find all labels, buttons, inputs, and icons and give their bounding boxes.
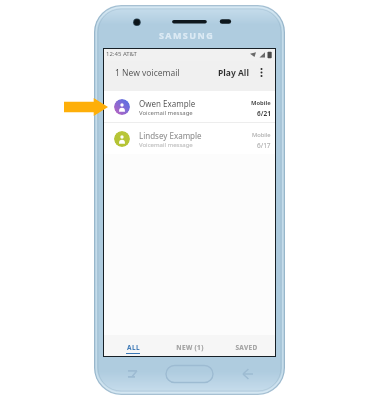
other: Pointer arrow	[64, 98, 108, 116]
button[interactable]: Play All	[215, 62, 252, 82]
staticText: 1 New voicemail	[115, 67, 180, 79]
button[interactable]: More options	[256, 61, 267, 82]
staticText: Mobile	[252, 131, 271, 139]
button[interactable]: ALL	[104, 335, 161, 356]
staticText: Voicemail message	[139, 109, 193, 117]
staticText: Lindsey Example	[139, 130, 202, 141]
button[interactable]: Lindsey Example	[104, 123, 275, 154]
staticText: 12:45 AT&T	[106, 50, 137, 58]
staticText: 6/17	[257, 141, 271, 150]
button[interactable]: Owen Example	[104, 91, 275, 122]
button[interactable]: NEW (1)	[161, 335, 218, 356]
staticText: Owen Example	[139, 98, 196, 109]
staticText: Voicemail message	[139, 141, 193, 149]
staticText: Mobile	[251, 99, 271, 107]
staticText: NEW (1)	[176, 343, 204, 352]
staticText: ALL	[127, 343, 140, 352]
staticText: Play All	[218, 67, 249, 79]
button[interactable]: SAVED	[218, 335, 275, 356]
staticText: SAVED	[235, 343, 258, 352]
staticText: SAMSUNG	[159, 29, 215, 41]
staticText: 6/21	[257, 109, 271, 118]
